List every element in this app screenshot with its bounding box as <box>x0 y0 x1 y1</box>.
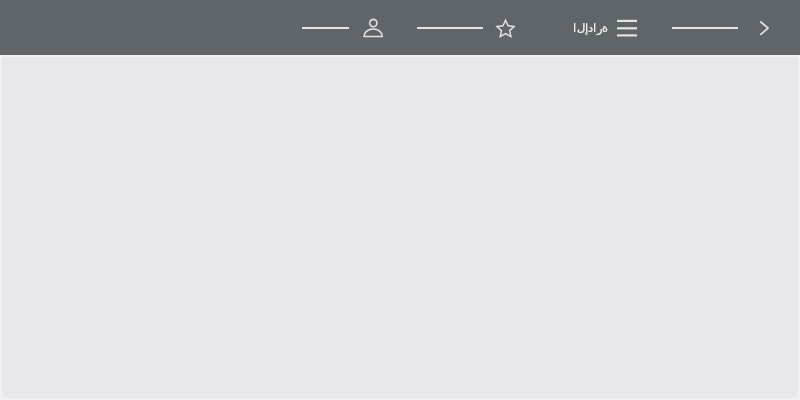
button[interactable]: Next <box>756 19 772 37</box>
button[interactable]: Menu item <box>672 21 738 35</box>
staticText: ة <box>602 21 609 34</box>
button[interactable]: Menu item <box>417 21 483 35</box>
staticText: ا <box>573 21 577 34</box>
staticText: ر <box>597 21 603 34</box>
staticText: إ <box>585 21 589 34</box>
staticText: ا <box>593 21 597 34</box>
button[interactable]: Menu <box>617 19 637 36</box>
button[interactable]: Account <box>363 18 383 38</box>
staticText: ل <box>577 21 586 34</box>
staticText: د <box>588 21 594 34</box>
button[interactable]: الإدارة <box>570 16 610 40</box>
button[interactable]: Favorite <box>495 18 516 39</box>
button[interactable]: Menu item <box>302 21 349 35</box>
